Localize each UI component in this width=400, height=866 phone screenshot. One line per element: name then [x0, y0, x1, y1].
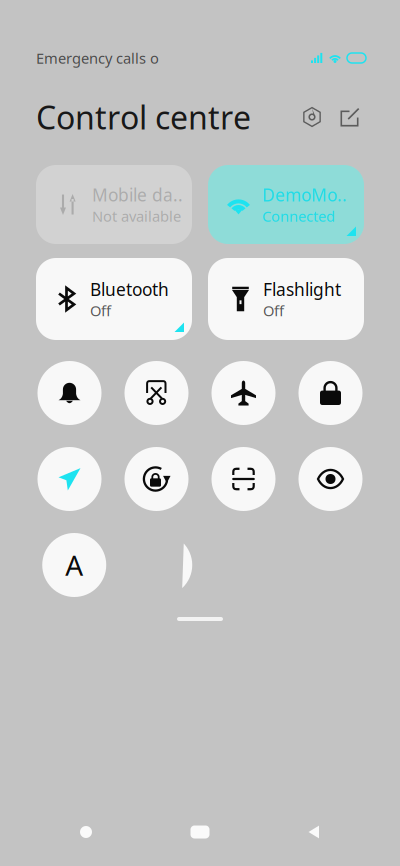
staticText: Off [263, 301, 284, 320]
staticText: Control centre [36, 96, 251, 138]
button[interactable]: Auto rotate [124, 447, 188, 511]
staticText: Connected [262, 206, 335, 226]
staticText: Not available [92, 206, 181, 226]
staticText: Emergency calls o [36, 48, 159, 68]
button[interactable]: Location [37, 447, 101, 511]
button[interactable]: Scan QR code [211, 447, 275, 511]
button[interactable]: Lock [298, 361, 362, 425]
button[interactable]: Recents [58, 814, 114, 850]
button[interactable]: Flashlight [208, 258, 364, 340]
button[interactable]: Sound [37, 361, 101, 425]
button[interactable]: Font size [42, 533, 106, 597]
staticText: Off [90, 301, 111, 320]
button[interactable]: More controls [129, 533, 184, 596]
staticText: DemoMo.. [262, 183, 347, 206]
staticText: Mobile da.. [92, 183, 183, 206]
button[interactable]: DemoMo.. [208, 165, 364, 244]
button[interactable]: Mobile da.. [36, 165, 192, 244]
button[interactable]: Aeroplane mode [211, 361, 275, 425]
staticText: A [65, 546, 83, 584]
button[interactable]: Edit [334, 101, 366, 133]
button[interactable]: Eye comfort [298, 447, 362, 511]
button[interactable]: Bluetooth [36, 258, 192, 340]
button[interactable]: Settings [296, 101, 328, 133]
staticText: Bluetooth [90, 278, 169, 301]
button[interactable]: Back [286, 814, 342, 850]
staticText: Flashlight [263, 278, 341, 301]
button[interactable]: Home [172, 814, 228, 850]
button[interactable]: Screenshot [124, 361, 188, 425]
